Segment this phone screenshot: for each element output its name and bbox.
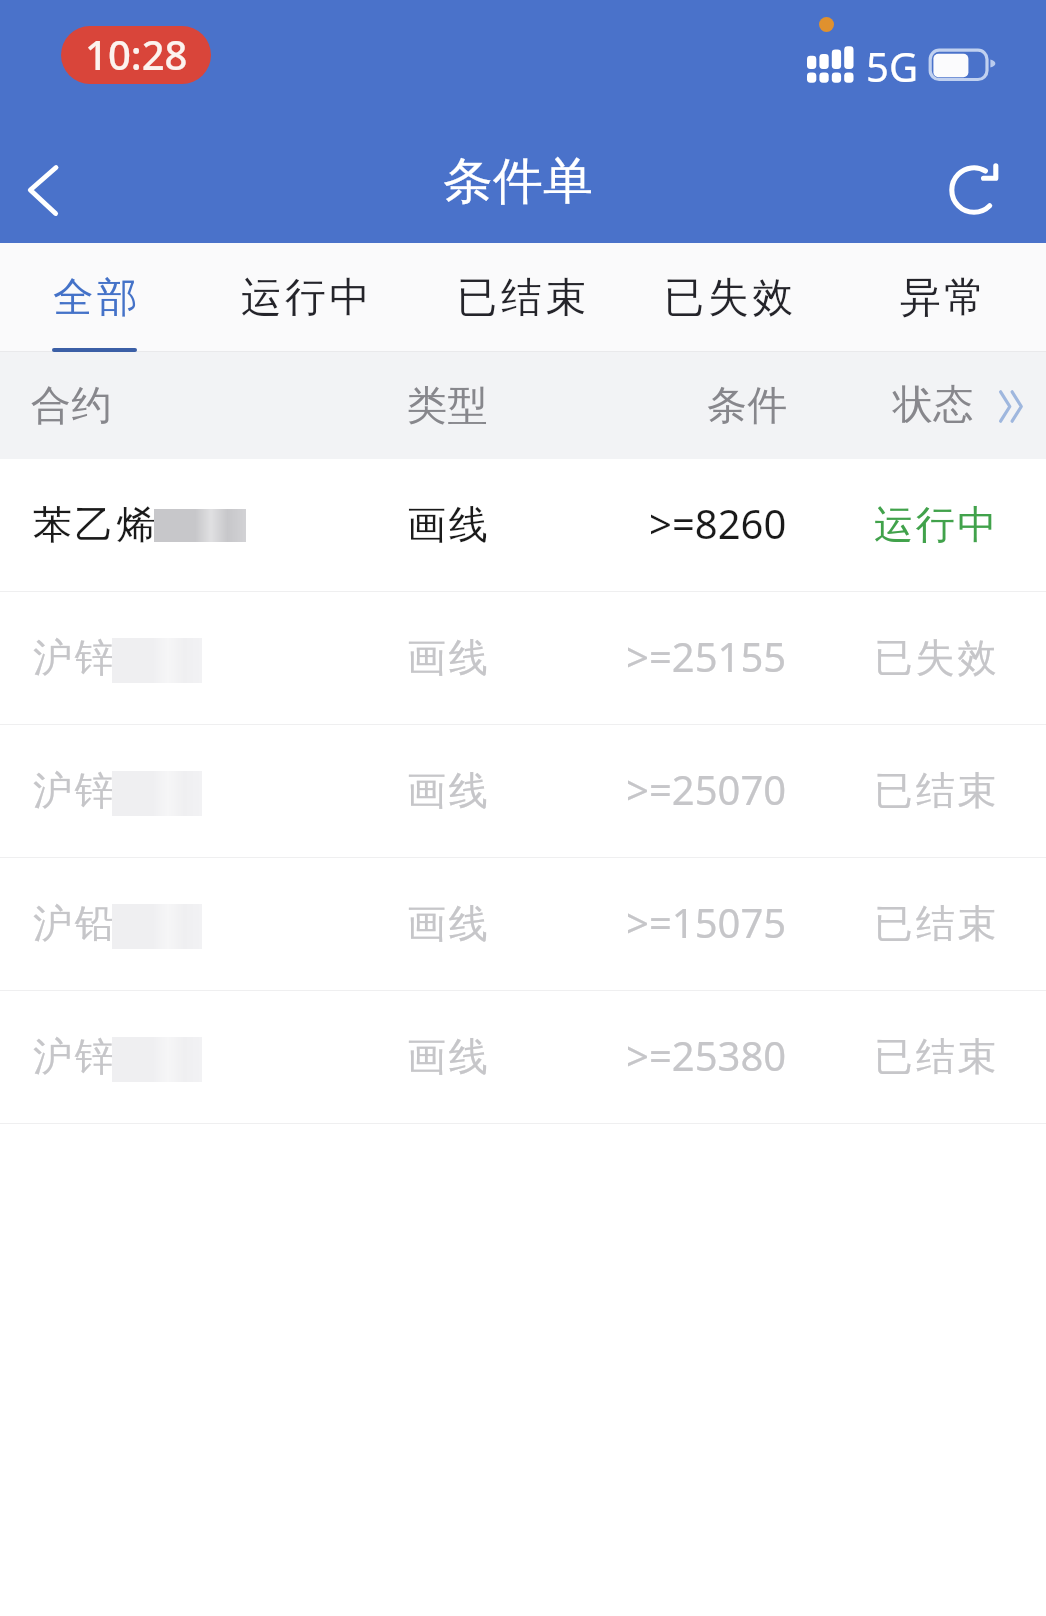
staticText: 异常 bbox=[900, 272, 989, 323]
button[interactable]: More columns bbox=[893, 350, 1024, 457]
staticText: >=25380 bbox=[626, 1028, 787, 1082]
staticText: 画线 bbox=[407, 766, 491, 815]
staticText: 已结束 bbox=[874, 899, 1000, 948]
staticText: 已结束 bbox=[874, 766, 1000, 815]
staticText: 画线 bbox=[407, 500, 491, 549]
button[interactable]: Refresh bbox=[934, 111, 1016, 243]
staticText: 5G bbox=[866, 39, 918, 93]
staticText: >=25155 bbox=[626, 629, 787, 683]
staticText: 合约 bbox=[31, 380, 113, 430]
button[interactable]: 全部 bbox=[24, 243, 170, 352]
button[interactable]: 苯乙烯 bbox=[0, 459, 1046, 592]
staticText: 条件单 bbox=[443, 150, 593, 213]
staticText: 运行中 bbox=[241, 272, 374, 323]
button[interactable]: 已结束 bbox=[429, 243, 617, 352]
staticText: >=25070 bbox=[626, 762, 787, 816]
button[interactable]: 异常 bbox=[871, 243, 1017, 352]
staticText: 画线 bbox=[407, 899, 491, 948]
staticText: >=8260 bbox=[649, 496, 787, 550]
staticText: 已结束 bbox=[874, 1032, 1000, 1081]
staticText: 运行中 bbox=[874, 500, 1000, 549]
button[interactable]: 沪锌 bbox=[0, 725, 1046, 858]
button[interactable]: 已失效 bbox=[636, 243, 824, 352]
staticText: 已失效 bbox=[874, 633, 1000, 682]
button[interactable]: 沪锌 bbox=[0, 592, 1046, 725]
staticText: 沪锌 bbox=[33, 633, 117, 682]
staticText: 画线 bbox=[407, 1032, 491, 1081]
staticText: 沪锌 bbox=[33, 1032, 117, 1081]
staticText: 类型 bbox=[407, 380, 489, 430]
staticText: 已失效 bbox=[664, 272, 797, 323]
staticText: 苯乙烯 bbox=[33, 500, 159, 549]
staticText: >=15075 bbox=[626, 895, 787, 949]
button[interactable]: 沪铅 bbox=[0, 858, 1046, 991]
staticText: 条件 bbox=[707, 380, 789, 430]
button[interactable]: Back bbox=[4, 111, 86, 243]
staticText: 沪锌 bbox=[33, 766, 117, 815]
staticText: 全部 bbox=[53, 272, 142, 323]
button[interactable]: 运行中 bbox=[213, 243, 401, 352]
staticText: 画线 bbox=[407, 633, 491, 682]
staticText: 状态 bbox=[893, 379, 975, 429]
staticText: 已结束 bbox=[457, 272, 590, 323]
button[interactable]: 沪锌 bbox=[0, 991, 1046, 1124]
staticText: 10:28 bbox=[85, 27, 188, 81]
staticText: 沪铅 bbox=[33, 899, 117, 948]
